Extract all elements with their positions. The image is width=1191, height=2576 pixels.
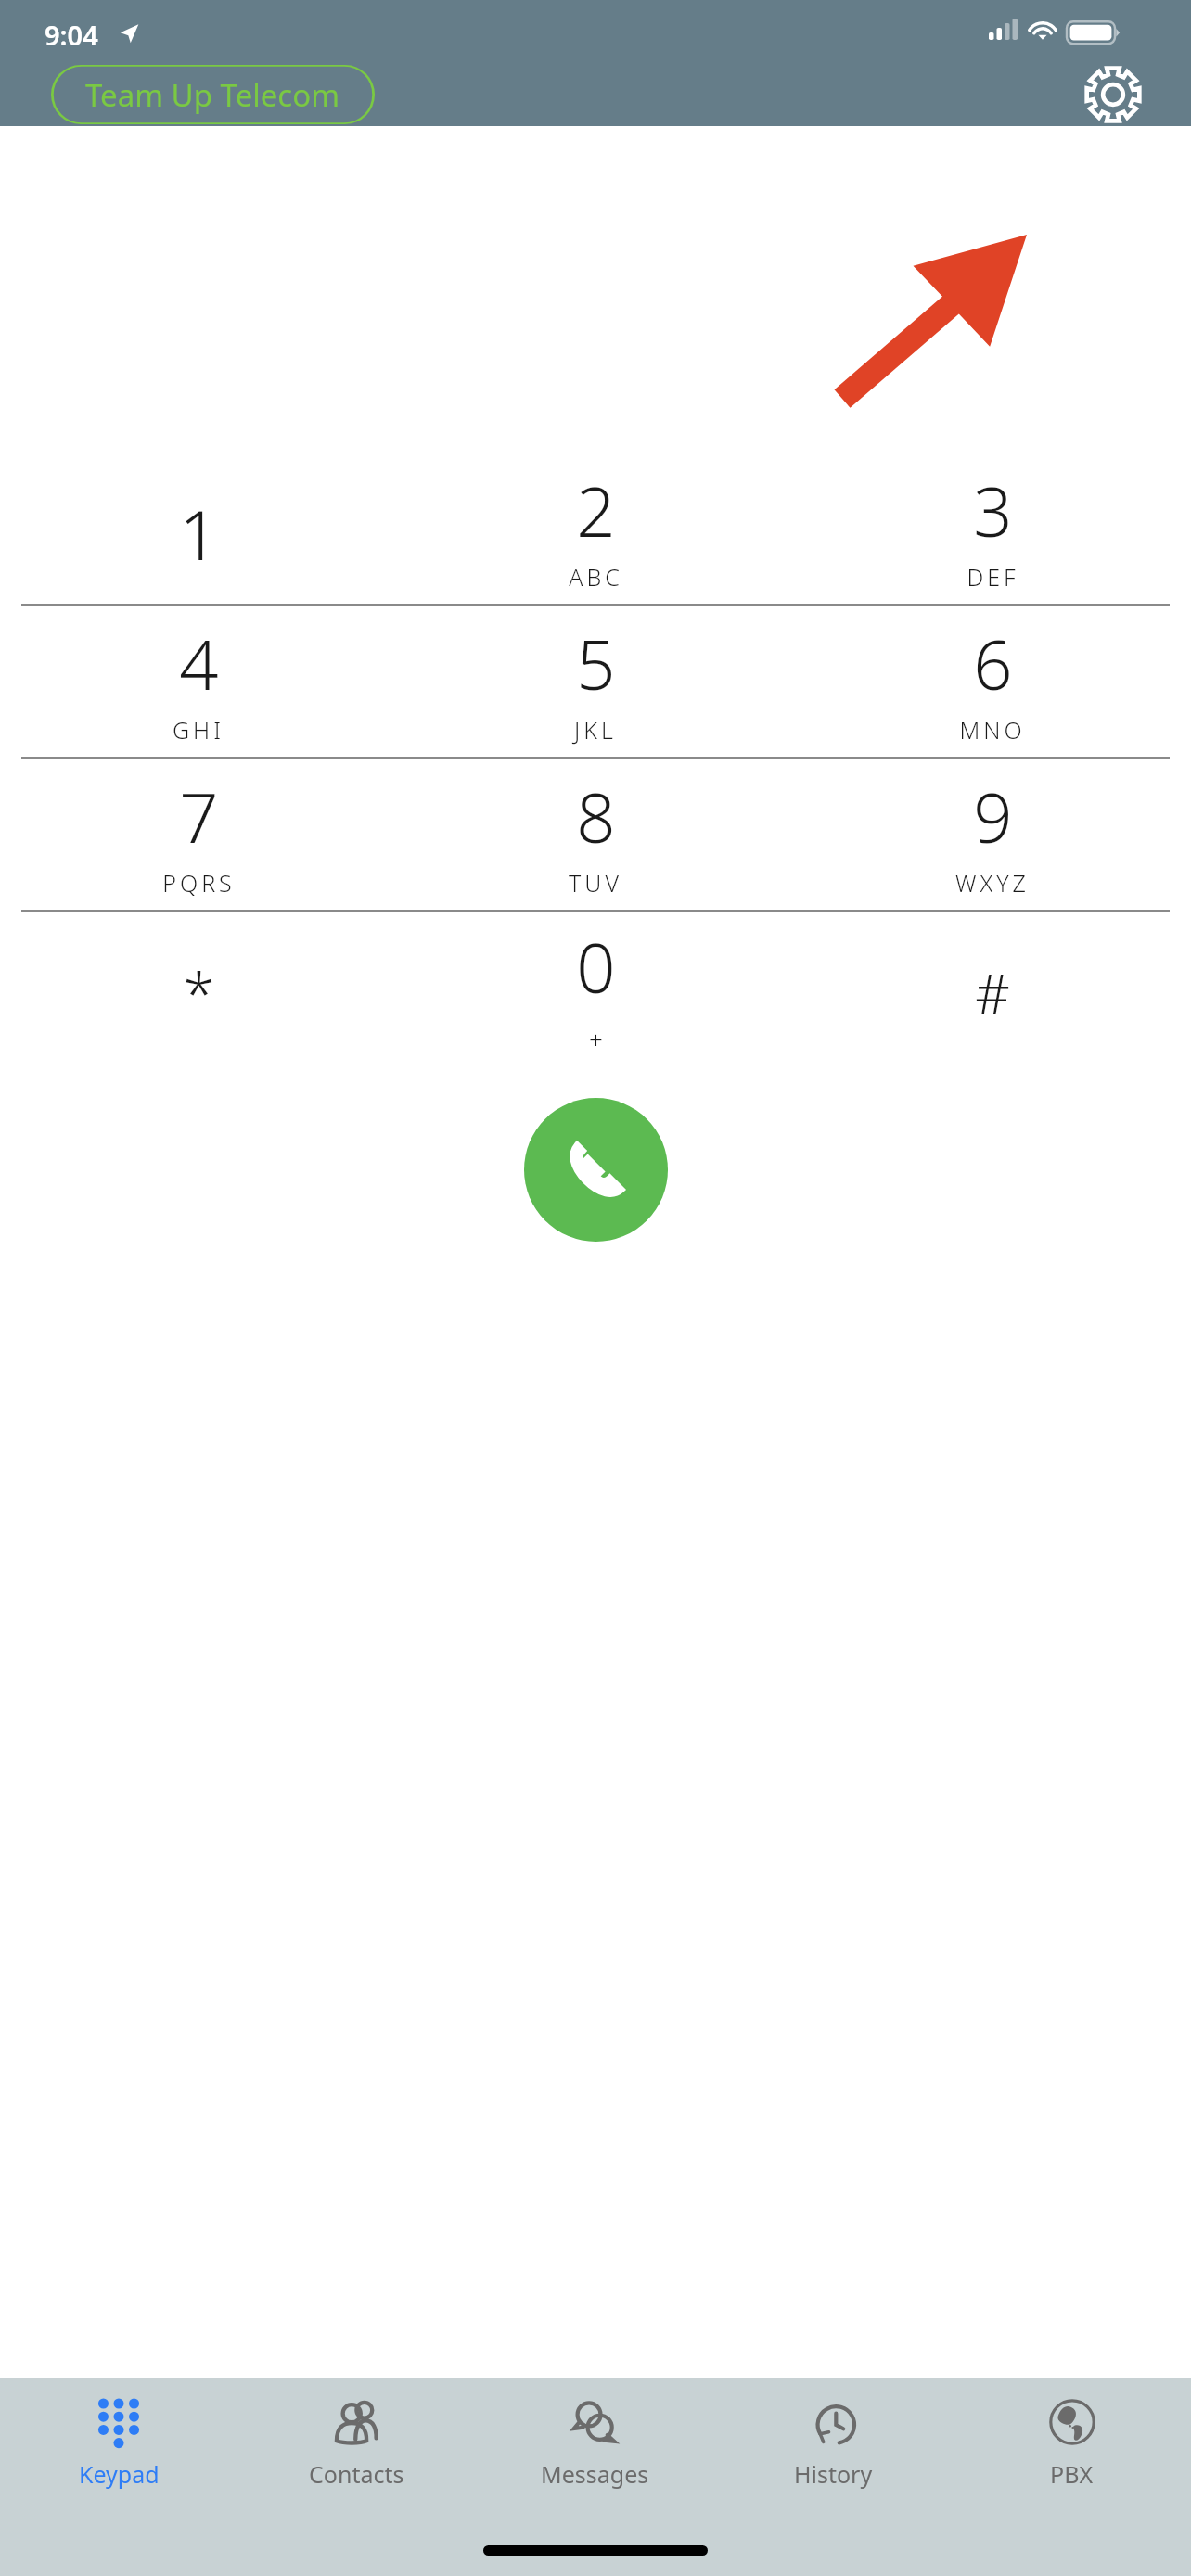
button[interactable]: 3 (794, 453, 1191, 604)
button[interactable]: 1 (0, 453, 397, 604)
staticText: 2 (576, 464, 616, 557)
button[interactable]: # (794, 912, 1191, 1063)
staticText: PQRS (162, 867, 236, 899)
staticText: 1 (179, 487, 219, 580)
staticText: TUV (569, 867, 622, 899)
button[interactable]: Settings (1069, 63, 1158, 126)
button[interactable]: Keypad (0, 2378, 237, 2518)
button[interactable]: * (0, 912, 397, 1063)
staticText: Contacts (309, 2458, 404, 2490)
button[interactable]: Team Up Telecom (51, 65, 375, 124)
button[interactable]: 8 (397, 759, 794, 910)
staticText: Keypad (79, 2458, 160, 2490)
button[interactable]: 9 (794, 759, 1191, 910)
staticText: 4 (179, 617, 219, 710)
button[interactable]: History (714, 2378, 953, 2518)
staticText: DEF (967, 561, 1019, 593)
staticText: ABC (569, 561, 623, 593)
staticText: 0 (576, 920, 616, 1014)
staticText: PBX (1050, 2458, 1094, 2490)
button[interactable]: PBX (953, 2378, 1191, 2518)
button[interactable]: Call (524, 1098, 668, 1242)
staticText: 3 (973, 464, 1013, 557)
staticText: * (183, 954, 215, 1032)
staticText: 9:04 (45, 17, 98, 53)
staticText: + (589, 1023, 603, 1055)
staticText: 7 (179, 770, 219, 863)
button[interactable]: 7 (0, 759, 397, 910)
staticText: History (794, 2458, 873, 2490)
button[interactable]: Contacts (237, 2378, 476, 2518)
button[interactable]: 2 (397, 453, 794, 604)
staticText: # (975, 956, 1010, 1029)
button[interactable]: Messages (476, 2378, 714, 2518)
staticText: Messages (541, 2458, 649, 2490)
staticText: JKL (574, 714, 617, 746)
staticText: 9 (973, 770, 1013, 863)
staticText: 5 (576, 617, 616, 710)
button[interactable]: 4 (0, 606, 397, 757)
button[interactable]: 5 (397, 606, 794, 757)
button[interactable]: 6 (794, 606, 1191, 757)
staticText: 6 (973, 617, 1013, 710)
button[interactable]: 0 (397, 912, 794, 1063)
staticText: GHI (173, 714, 224, 746)
staticText: Team Up Telecom (85, 74, 340, 116)
staticText: MNO (959, 714, 1026, 746)
staticText: WXYZ (955, 867, 1030, 899)
staticText: 8 (576, 770, 616, 863)
